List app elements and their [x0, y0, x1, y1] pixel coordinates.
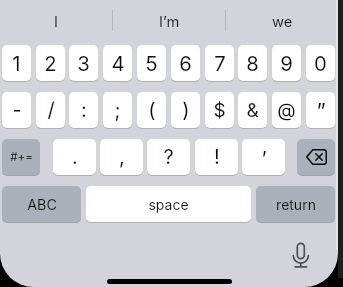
staticText: 0 — [314, 51, 327, 76]
button[interactable]: & — [238, 92, 267, 128]
button[interactable]: ; — [103, 92, 132, 128]
button[interactable]: ABC — [2, 186, 81, 222]
button[interactable]: $ — [205, 92, 234, 128]
staticText: - — [12, 98, 22, 122]
button[interactable]: 4 — [103, 45, 132, 81]
button[interactable]: Dictation — [286, 238, 315, 270]
button[interactable]: ! — [195, 139, 238, 175]
button[interactable]: I’m — [113, 2, 225, 39]
button[interactable]: 8 — [238, 45, 267, 81]
staticText: 4 — [111, 51, 125, 76]
button[interactable]: @ — [272, 92, 301, 128]
staticText: ’ — [261, 147, 267, 171]
staticText: ; — [114, 98, 121, 122]
button[interactable]: return — [256, 186, 335, 222]
button[interactable]: 0 — [306, 45, 335, 81]
staticText: / — [47, 98, 55, 122]
staticText: 1 — [12, 51, 21, 76]
button[interactable]: ? — [147, 139, 190, 175]
button[interactable]: ) — [171, 92, 200, 128]
staticText: ? — [163, 145, 174, 169]
staticText: I’m — [159, 13, 180, 31]
button[interactable]: - — [2, 92, 31, 128]
staticText: ” — [316, 99, 326, 124]
staticText: 8 — [246, 51, 259, 76]
staticText: 6 — [179, 51, 192, 76]
staticText: : — [81, 98, 87, 122]
staticText: 9 — [280, 51, 293, 76]
button[interactable]: : — [69, 92, 98, 128]
staticText: $ — [213, 99, 226, 122]
staticText: & — [246, 99, 259, 122]
button[interactable]: . — [53, 139, 96, 175]
staticText: ! — [214, 145, 220, 169]
staticText: , — [119, 145, 125, 169]
staticText: #+= — [10, 150, 33, 164]
staticText: space — [148, 196, 189, 213]
button[interactable]: 1 — [2, 45, 31, 81]
button[interactable]: #+= — [2, 139, 40, 175]
staticText: I — [54, 13, 58, 31]
staticText: 5 — [145, 51, 158, 76]
staticText: we — [272, 13, 293, 31]
staticText: return — [276, 196, 316, 213]
button[interactable]: 3 — [69, 45, 98, 81]
button[interactable]: ’ — [242, 139, 285, 175]
button[interactable]: Backspace — [297, 139, 335, 175]
button[interactable]: ” — [306, 92, 335, 128]
staticText: ) — [182, 98, 190, 122]
staticText: 2 — [44, 51, 57, 76]
staticText: ABC — [27, 196, 57, 213]
button[interactable]: 7 — [205, 45, 234, 81]
button[interactable]: 2 — [36, 45, 65, 81]
button[interactable]: ( — [137, 92, 166, 128]
staticText: 7 — [214, 51, 226, 76]
button[interactable]: we — [226, 2, 338, 39]
button[interactable]: I — [0, 2, 112, 39]
button[interactable]: , — [100, 139, 143, 175]
button[interactable]: 5 — [137, 45, 166, 81]
button[interactable]: 6 — [171, 45, 200, 81]
staticText: 3 — [77, 51, 90, 76]
button[interactable]: / — [36, 92, 65, 128]
button[interactable]: space — [86, 186, 251, 222]
button[interactable]: 9 — [272, 45, 301, 81]
staticText: @ — [277, 99, 296, 122]
staticText: . — [72, 145, 78, 169]
staticText: ( — [148, 98, 156, 122]
